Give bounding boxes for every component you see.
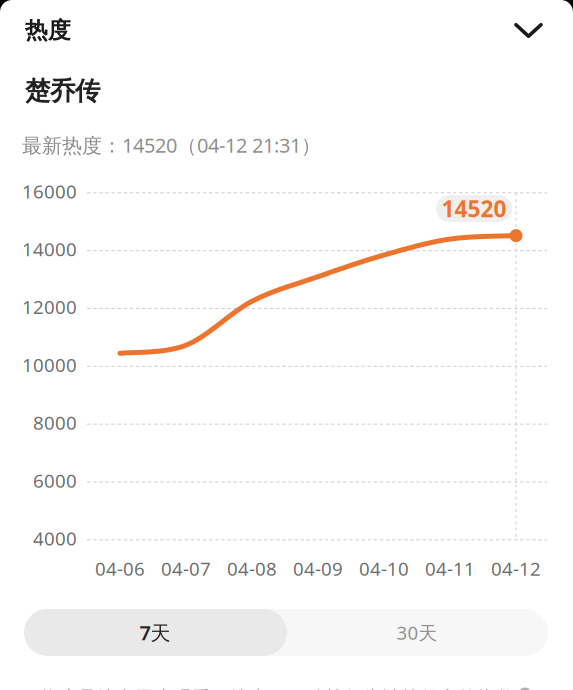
staticText: 14000 bbox=[22, 237, 77, 261]
staticText: 6000 bbox=[33, 468, 77, 493]
staticText: 7天 bbox=[139, 619, 170, 646]
staticText: 12000 bbox=[22, 294, 77, 319]
button[interactable]: Collapse bbox=[502, 11, 555, 52]
staticText: 8000 bbox=[33, 410, 77, 435]
staticText: 最新热度：14520（04-12 21:31） bbox=[22, 132, 321, 158]
staticText: 04-07 bbox=[161, 556, 211, 581]
staticText: 30天 bbox=[396, 620, 437, 645]
staticText: 10000 bbox=[22, 352, 77, 377]
staticText: 16000 bbox=[22, 179, 77, 204]
staticText: 04-11 bbox=[425, 556, 475, 581]
staticText: 04-09 bbox=[293, 556, 343, 581]
button[interactable]: 30天 bbox=[286, 609, 548, 656]
staticText: 04-12 bbox=[491, 556, 541, 581]
staticText: 04-10 bbox=[359, 556, 409, 581]
staticText: 14520 bbox=[441, 193, 506, 223]
staticText: 04-08 bbox=[227, 556, 277, 581]
button[interactable]: 7天 bbox=[24, 609, 286, 656]
staticText: 热度是综合用户观看、搜索、互动等行为计算得出的指数 bbox=[40, 686, 515, 690]
staticText: 楚乔传 bbox=[25, 75, 100, 106]
staticText: 热度 bbox=[25, 17, 71, 44]
staticText: 04-06 bbox=[95, 556, 145, 581]
staticText: 4000 bbox=[33, 526, 77, 551]
